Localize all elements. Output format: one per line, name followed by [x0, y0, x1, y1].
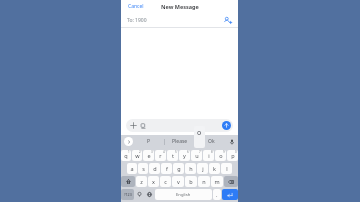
button[interactable]: Add attachment: [126, 119, 233, 132]
staticText: y: [183, 152, 186, 159]
button[interactable]: Expand toolbar: [124, 137, 133, 146]
button[interactable]: t: [167, 150, 178, 161]
staticText: a: [130, 165, 134, 172]
button[interactable]: Add contact: [223, 16, 232, 25]
button[interactable]: ?123: [121, 189, 134, 200]
staticText: .: [216, 191, 218, 198]
staticText: 5: [175, 150, 177, 154]
staticText: 0: [235, 150, 237, 154]
staticText: q: [124, 152, 128, 159]
button[interactable]: n: [198, 176, 210, 187]
button[interactable]: P: [133, 135, 164, 148]
staticText: English: [176, 192, 191, 198]
staticText: b: [189, 178, 193, 185]
button[interactable]: .: [213, 189, 221, 200]
staticText: k: [213, 165, 216, 172]
button[interactable]: Change language: [145, 188, 154, 201]
button[interactable]: Emoji: [135, 188, 144, 201]
staticText: v: [177, 178, 180, 185]
button[interactable]: f: [161, 163, 172, 174]
button[interactable]: Shift: [121, 176, 135, 187]
other: Add attachment: [130, 122, 137, 129]
button[interactable]: p: [227, 150, 238, 161]
button[interactable]: d: [149, 163, 160, 174]
staticText: f: [166, 165, 168, 172]
staticText: ?123: [124, 192, 132, 197]
other: Sticker: [140, 123, 146, 129]
button[interactable]: j: [197, 163, 208, 174]
staticText: z: [140, 178, 143, 185]
button[interactable]: r: [155, 150, 166, 161]
button[interactable]: o: [215, 150, 226, 161]
button[interactable]: Enter: [222, 189, 238, 200]
staticText: w: [135, 152, 140, 159]
staticText: c: [164, 178, 167, 185]
button[interactable]: l: [221, 163, 232, 174]
button[interactable]: z: [136, 176, 147, 187]
staticText: 4: [163, 150, 165, 154]
button[interactable]: q: [121, 150, 131, 161]
staticText: 9: [223, 150, 225, 154]
button[interactable]: b: [185, 176, 197, 187]
staticText: Ok: [208, 138, 215, 145]
staticText: o: [197, 128, 202, 138]
staticText: x: [152, 178, 155, 185]
staticText: 3: [151, 150, 153, 154]
staticText: d: [153, 165, 157, 172]
staticText: New Message: [161, 3, 199, 10]
staticText: h: [189, 165, 193, 172]
staticText: m: [214, 178, 220, 185]
button[interactable]: English: [155, 189, 212, 200]
staticText: 1: [128, 150, 130, 154]
button[interactable]: v: [172, 176, 184, 187]
staticText: j: [202, 165, 204, 172]
staticText: 7: [199, 150, 201, 154]
staticText: Please: [172, 138, 188, 145]
staticText: Cancel: [128, 3, 144, 10]
staticText: s: [142, 165, 145, 172]
staticText: o: [219, 152, 223, 159]
button[interactable]: m: [211, 176, 223, 187]
button[interactable]: e: [143, 150, 154, 161]
button[interactable]: u: [191, 150, 202, 161]
staticText: i: [208, 152, 210, 159]
button[interactable]: Ok: [196, 135, 226, 148]
staticText: e: [147, 152, 151, 159]
button[interactable]: i: [203, 150, 214, 161]
button[interactable]: s: [138, 163, 148, 174]
button[interactable]: g: [173, 163, 184, 174]
staticText: t: [172, 152, 174, 159]
staticText: 2: [139, 150, 141, 154]
staticText: n: [202, 178, 206, 185]
staticText: r: [159, 152, 162, 159]
button[interactable]: Cancel: [127, 2, 145, 11]
button[interactable]: x: [148, 176, 159, 187]
button[interactable]: k: [209, 163, 220, 174]
button[interactable]: Please: [165, 135, 195, 148]
button[interactable]: Backspace: [224, 176, 238, 187]
staticText: 6: [187, 150, 189, 154]
button[interactable]: Voice input: [226, 135, 238, 148]
button[interactable]: a: [127, 163, 137, 174]
button[interactable]: h: [185, 163, 196, 174]
staticText: l: [226, 165, 228, 172]
staticText: 8: [211, 150, 213, 154]
staticText: u: [195, 152, 199, 159]
button[interactable]: y: [179, 150, 190, 161]
staticText: P: [147, 138, 151, 145]
button[interactable]: w: [132, 150, 142, 161]
staticText: To: 1900: [127, 17, 147, 24]
staticText: p: [231, 152, 235, 159]
staticText: g: [177, 165, 181, 172]
button[interactable]: c: [160, 176, 171, 187]
button[interactable]: Send: [222, 121, 231, 130]
